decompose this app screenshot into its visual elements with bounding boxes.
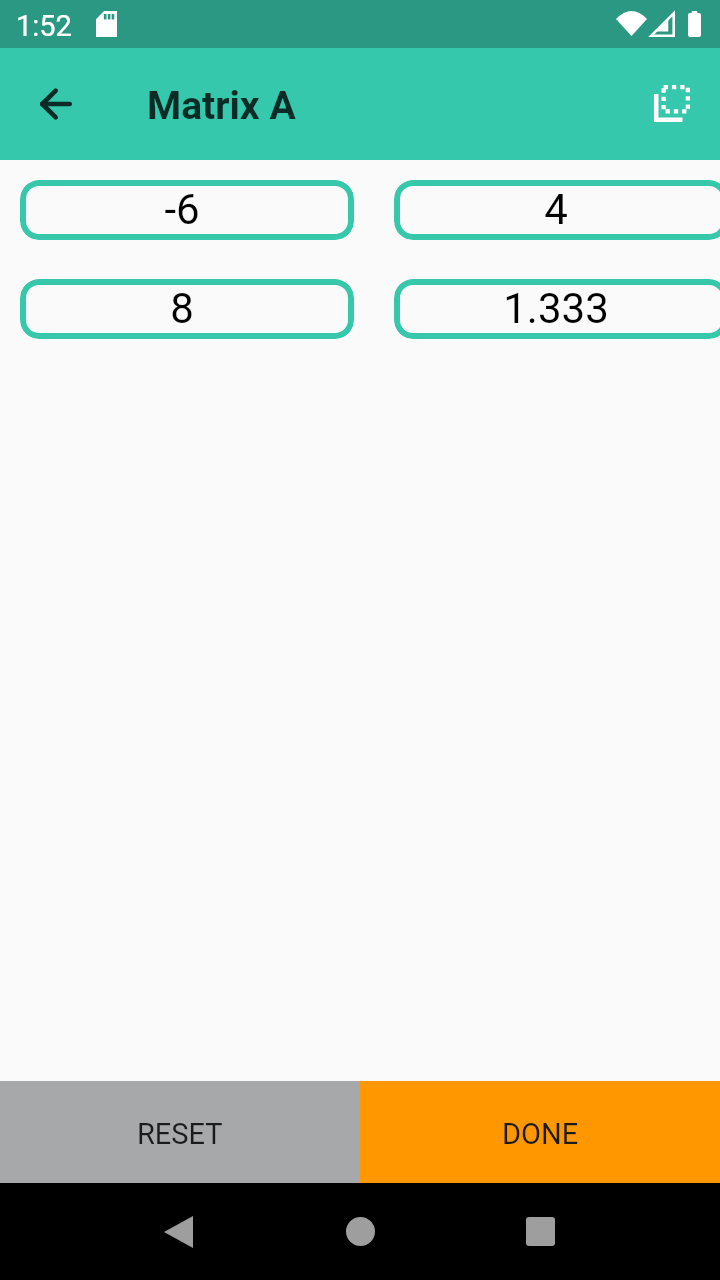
staticText: DONE <box>502 1117 579 1151</box>
button[interactable]: 4 <box>394 180 720 240</box>
staticText: 1.333 <box>503 284 609 333</box>
button[interactable]: RESET <box>0 1081 360 1183</box>
staticText: -6 <box>164 185 200 234</box>
button[interactable]: Home <box>312 1183 408 1280</box>
staticText: RESET <box>137 1117 223 1151</box>
button[interactable]: DONE <box>360 1081 720 1183</box>
button[interactable]: Resize matrix <box>636 66 712 142</box>
button[interactable]: 8 <box>20 279 354 339</box>
staticText: Matrix A <box>147 83 296 129</box>
staticText: 8 <box>170 284 194 333</box>
button[interactable]: Recents <box>492 1183 588 1280</box>
button[interactable]: Back <box>130 1183 226 1280</box>
button[interactable]: 1.333 <box>394 279 720 339</box>
button[interactable]: -6 <box>20 180 354 240</box>
button[interactable]: Back <box>20 68 92 140</box>
staticText: 1:52 <box>16 9 72 43</box>
staticText: 4 <box>544 185 568 234</box>
